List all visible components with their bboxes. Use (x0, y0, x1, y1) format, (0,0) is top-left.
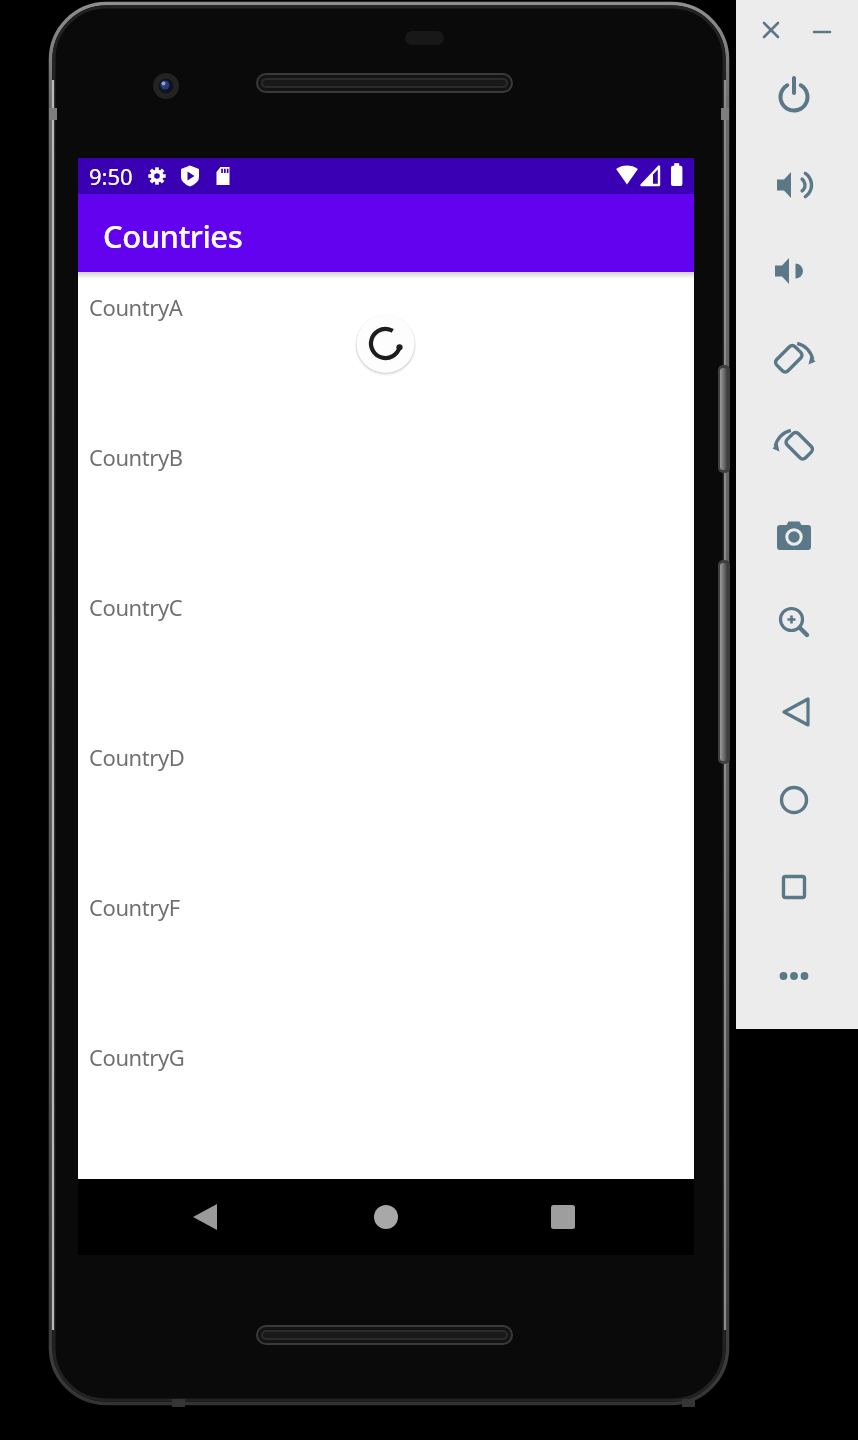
button[interactable] (766, 245, 818, 297)
button[interactable] (539, 1193, 587, 1241)
button[interactable] (768, 596, 820, 648)
button[interactable]: CountryG (78, 1022, 694, 1172)
staticText: 9:50 (89, 161, 133, 191)
button[interactable] (771, 686, 823, 738)
button[interactable] (768, 71, 820, 123)
button[interactable] (768, 510, 820, 562)
staticText: Countries (103, 215, 243, 257)
button[interactable]: CountryA (78, 272, 694, 422)
button[interactable] (796, 6, 848, 58)
button[interactable] (768, 159, 820, 211)
button[interactable]: CountryB (78, 422, 694, 572)
staticText: CountryC (89, 592, 183, 622)
button[interactable] (768, 774, 820, 826)
button[interactable] (745, 4, 797, 56)
button[interactable]: CountryF (78, 872, 694, 1022)
staticText: CountryG (89, 1042, 185, 1072)
button[interactable] (181, 1193, 229, 1241)
button[interactable] (362, 1193, 410, 1241)
staticText: CountryA (89, 292, 183, 322)
button[interactable] (768, 861, 820, 913)
button[interactable]: CountryC (78, 572, 694, 722)
staticText: CountryF (89, 892, 180, 922)
button[interactable] (768, 421, 820, 473)
button[interactable]: CountryD (78, 722, 694, 872)
staticText: CountryB (89, 442, 183, 472)
button[interactable] (768, 334, 820, 386)
button[interactable] (768, 950, 820, 1002)
staticText: CountryD (89, 742, 185, 772)
